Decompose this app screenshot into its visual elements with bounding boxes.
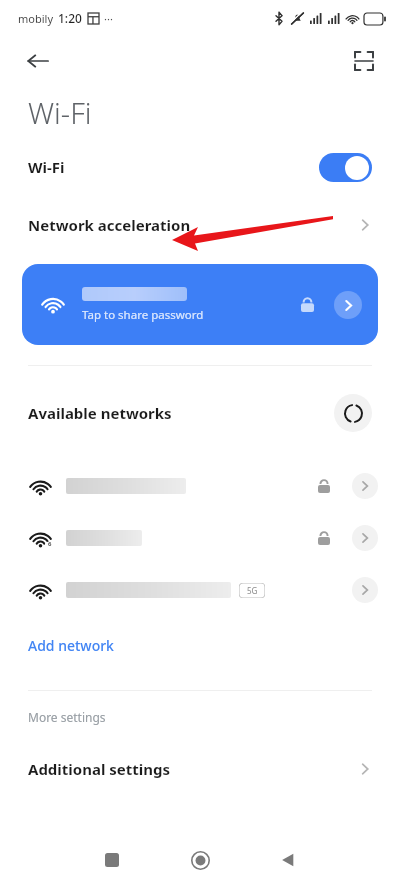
button[interactable]: Additional settings	[0, 743, 400, 795]
button[interactable]: 6	[0, 512, 400, 564]
staticText: 5G	[247, 585, 258, 596]
button[interactable]: Network details	[352, 577, 378, 603]
staticText: Available networks	[28, 403, 172, 423]
button[interactable]: Wi-Fi	[0, 138, 400, 196]
staticText: 1:20	[58, 10, 82, 26]
staticText: Wi-Fi	[28, 157, 65, 177]
button[interactable]: Network details	[352, 473, 378, 499]
staticText: More settings	[28, 709, 106, 725]
button[interactable]: Wi-Fi toggle	[319, 153, 372, 182]
button[interactable]: Network details	[352, 525, 378, 551]
staticText: 6	[48, 540, 52, 548]
button[interactable]: Refresh networks	[334, 394, 372, 432]
button[interactable]: Back	[14, 37, 62, 85]
button[interactable]: 5G	[0, 564, 400, 616]
staticText: Tap to share password	[82, 307, 204, 323]
button[interactable]: Scan QR code	[342, 39, 386, 83]
button[interactable]: Add network	[0, 616, 400, 674]
button[interactable]: Network details	[334, 291, 362, 319]
button[interactable]: Home	[172, 832, 228, 888]
staticText: Wi-Fi	[28, 93, 92, 132]
staticText: ···	[104, 11, 113, 26]
button[interactable]: Network details	[0, 460, 400, 512]
staticText: Network acceleration	[28, 215, 191, 235]
button[interactable]: Back	[260, 832, 316, 888]
button[interactable]: Network acceleration	[0, 196, 400, 254]
staticText: Additional settings	[28, 759, 171, 779]
staticText: mobily	[18, 11, 53, 26]
staticText: Add network	[28, 636, 114, 655]
button[interactable]: Tap to share password	[22, 264, 378, 345]
button[interactable]: Recent apps	[84, 832, 140, 888]
